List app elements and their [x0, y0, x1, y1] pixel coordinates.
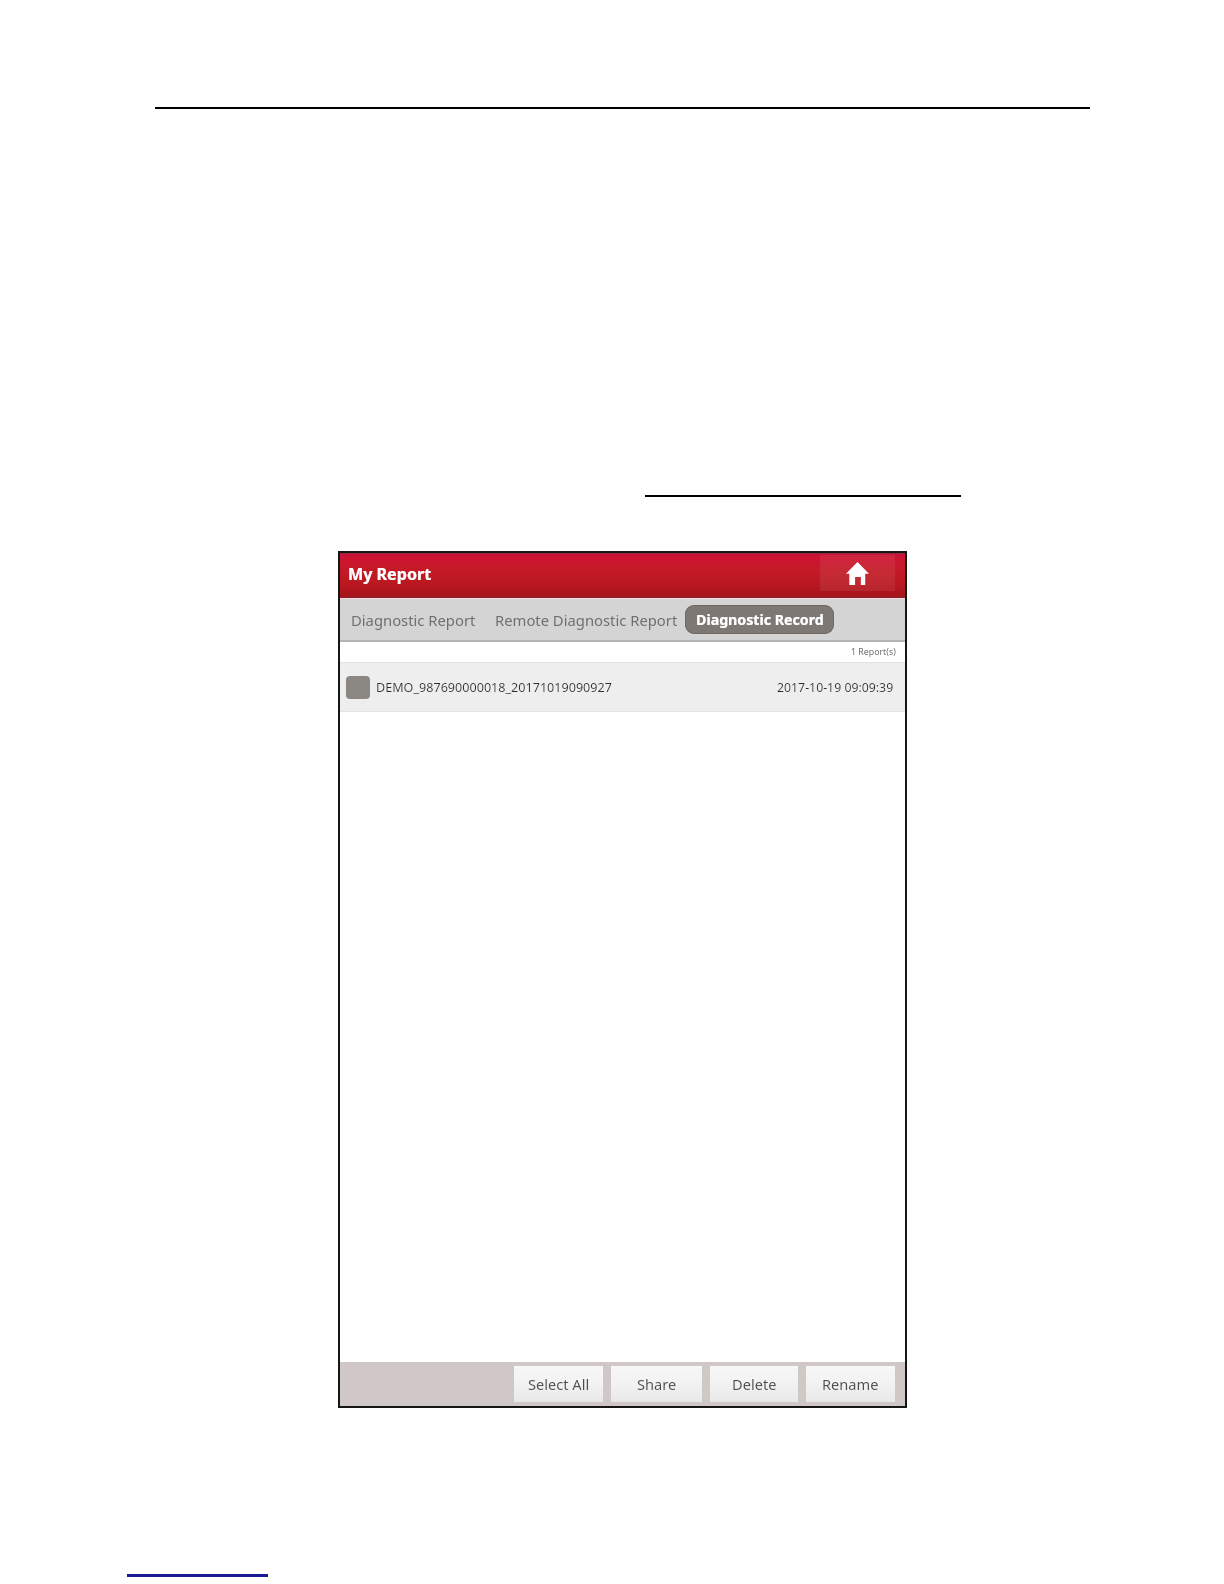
button[interactable]: Diagnostic Report: [344, 599, 483, 640]
staticText: My Report: [348, 563, 432, 585]
button[interactable]: Share: [611, 1366, 702, 1402]
button[interactable]: Rename: [806, 1366, 895, 1402]
staticText: 1 Report(s): [851, 646, 896, 658]
staticText: 2017-10-19 09:09:39: [777, 679, 894, 696]
staticText: Diagnostic Record: [696, 610, 824, 629]
button[interactable]: DEMO_987690000018_20171019090927: [340, 663, 905, 711]
staticText: Select All: [528, 1374, 590, 1394]
button[interactable]: Remote Diagnostic Report: [488, 599, 685, 640]
button[interactable]: Delete: [710, 1366, 798, 1402]
staticText: Diagnostic Report: [351, 610, 476, 630]
staticText: DEMO_987690000018_20171019090927: [376, 679, 612, 696]
button[interactable]: Home: [820, 555, 895, 591]
staticText: Delete: [732, 1374, 777, 1394]
button[interactable]: Diagnostic Record: [685, 605, 834, 634]
button[interactable]: Select All: [514, 1366, 603, 1402]
staticText: Rename: [822, 1374, 879, 1394]
staticText: Share: [637, 1374, 677, 1394]
staticText: Remote Diagnostic Report: [495, 610, 678, 630]
